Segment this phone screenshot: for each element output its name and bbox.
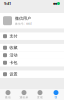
staticText: 通讯录 <box>19 96 28 99</box>
button[interactable]: 微信 <box>0 89 16 100</box>
staticText: 微信用户 <box>15 16 31 21</box>
staticText: 微信 <box>5 96 11 99</box>
staticText: 卡包 <box>9 60 17 65</box>
staticText: 活动 <box>9 53 17 58</box>
button[interactable]: 收藏 <box>0 44 64 51</box>
staticText: ●● <box>53 2 57 5</box>
button[interactable]: 活动 <box>0 51 64 59</box>
button[interactable]: 我 <box>48 89 64 100</box>
button[interactable]: 通讯录 <box>16 89 32 100</box>
button[interactable]: 设置 <box>0 70 64 78</box>
staticText: 9:41 <box>4 1 11 6</box>
button[interactable]: 支付 <box>0 32 64 40</box>
staticText: 我 <box>54 96 57 99</box>
button[interactable]: 卡包 <box>0 59 64 66</box>
staticText: 支付 <box>9 34 17 39</box>
button[interactable]: 发现 <box>32 89 48 100</box>
button[interactable]: 微信用户 <box>0 13 64 28</box>
staticText: 收藏 <box>9 45 17 50</box>
staticText: 微信号: wxid <box>15 22 32 25</box>
staticText: 发现 <box>37 96 43 99</box>
staticText: 设置 <box>9 72 17 77</box>
